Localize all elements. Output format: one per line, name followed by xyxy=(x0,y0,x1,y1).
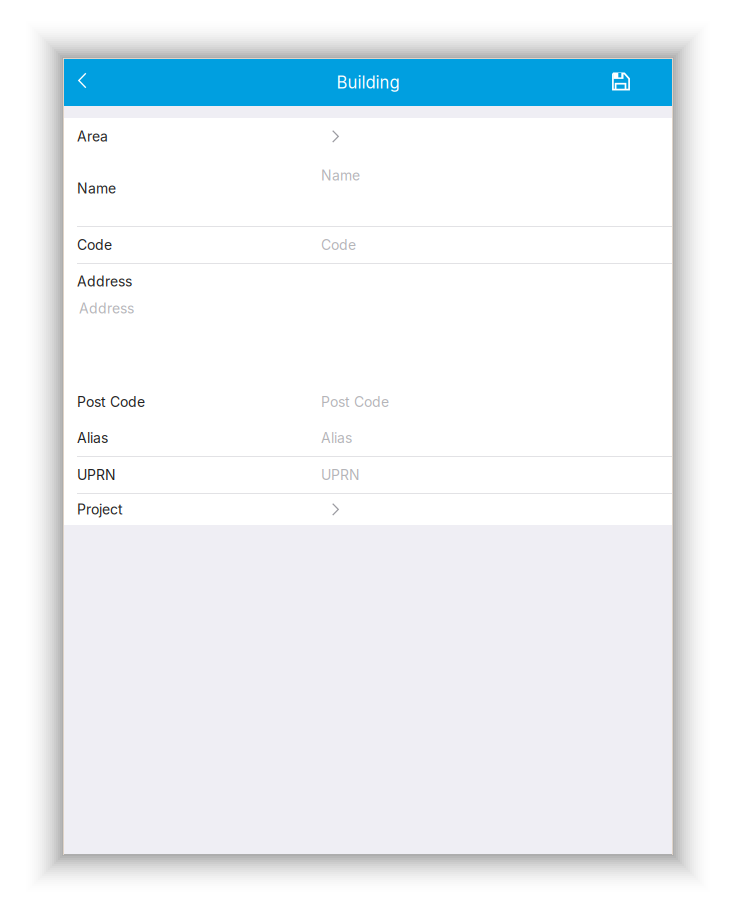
staticText: Post Code xyxy=(321,393,389,410)
button[interactable]: Save xyxy=(628,59,672,106)
button[interactable]: UPRN xyxy=(64,457,672,493)
staticText: Project xyxy=(77,501,123,518)
staticText: Code xyxy=(77,236,112,253)
button[interactable]: Project xyxy=(64,494,672,525)
button[interactable]: Area xyxy=(64,118,672,155)
staticText: UPRN xyxy=(77,466,116,483)
staticText: Alias xyxy=(77,429,108,446)
staticText: Name xyxy=(321,167,360,184)
staticText: UPRN xyxy=(321,466,360,483)
staticText: Alias xyxy=(321,429,352,446)
button[interactable]: Code xyxy=(64,227,672,263)
button[interactable]: Alias xyxy=(64,420,672,456)
button[interactable]: Back xyxy=(64,59,108,106)
button[interactable]: Address xyxy=(64,264,672,384)
staticText: Building xyxy=(336,72,399,93)
staticText: Address xyxy=(77,273,132,290)
button[interactable]: Post Code xyxy=(64,384,672,420)
staticText: Code xyxy=(321,236,356,253)
staticText: Name xyxy=(77,180,116,197)
staticText: Area xyxy=(77,128,108,145)
staticText: Post Code xyxy=(77,393,145,410)
button[interactable]: Name xyxy=(64,155,672,226)
staticText: Address xyxy=(79,300,134,317)
